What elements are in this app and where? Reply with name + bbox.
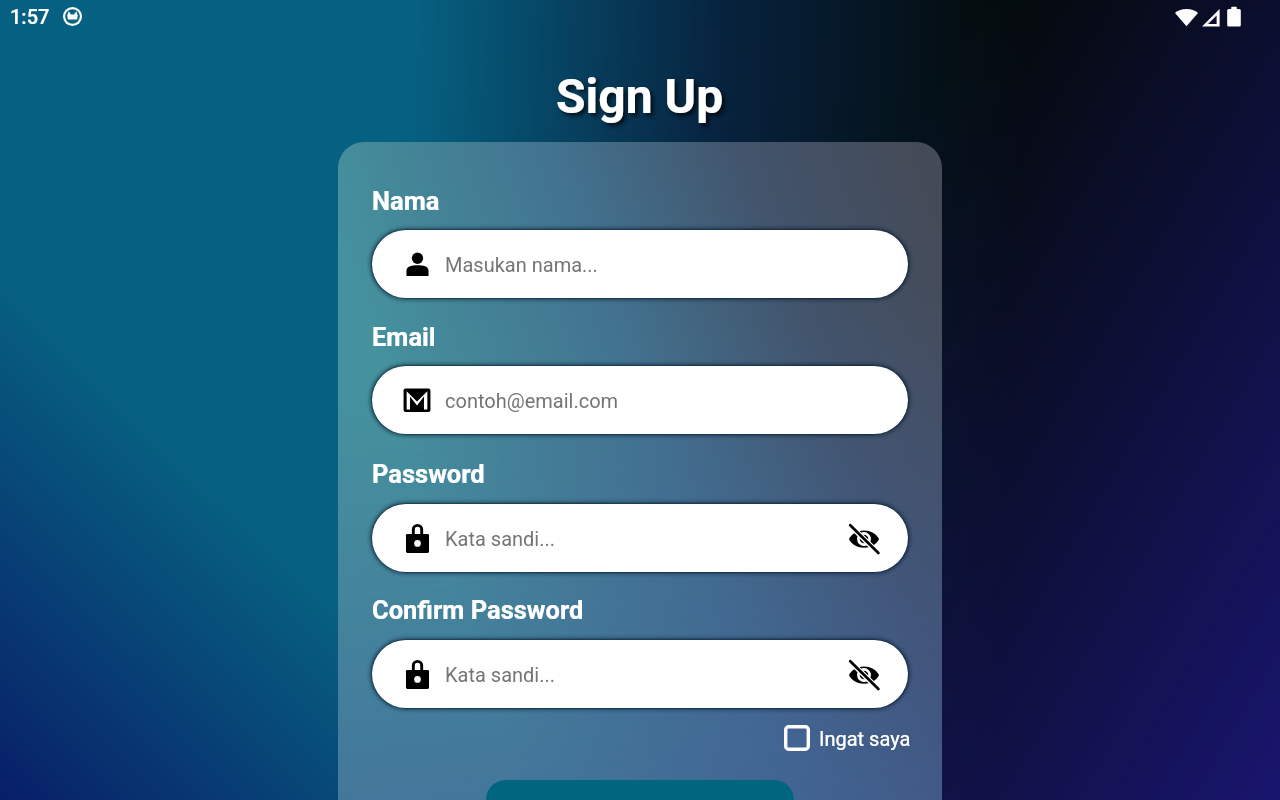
staticText: Confirm Password bbox=[372, 595, 584, 625]
button[interactable]: Masukan nama... bbox=[372, 230, 908, 298]
staticText: Email bbox=[372, 322, 436, 352]
button[interactable]: Ingat saya bbox=[784, 725, 911, 751]
staticText: Ingat saya bbox=[819, 727, 911, 750]
staticText: Kata sandi... bbox=[445, 527, 556, 550]
other: Notification bbox=[63, 7, 82, 26]
staticText: Nama bbox=[372, 186, 440, 216]
button[interactable]: Kata sandi... bbox=[372, 504, 908, 572]
button[interactable]: Kata sandi... bbox=[372, 640, 908, 708]
staticText: Kata sandi... bbox=[445, 663, 556, 686]
staticText: Sign Up bbox=[556, 68, 724, 124]
button[interactable]: Show password bbox=[842, 516, 886, 560]
staticText: Password bbox=[372, 459, 485, 489]
button[interactable]: contoh@email.com bbox=[372, 366, 908, 434]
button[interactable]: Daftar bbox=[486, 780, 794, 800]
staticText: Masukan nama... bbox=[445, 253, 598, 276]
staticText: 1:57 bbox=[10, 5, 50, 28]
staticText: contoh@email.com bbox=[445, 389, 619, 412]
button[interactable]: Show password bbox=[842, 652, 886, 696]
